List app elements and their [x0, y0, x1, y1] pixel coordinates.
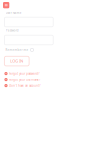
button[interactable]: Remember me — [31, 48, 33, 51]
staticText: Don't have an account? — [9, 84, 40, 87]
staticText: Password — [6, 29, 19, 32]
staticText: User Name — [6, 11, 22, 15]
staticText: Forgot your password? — [9, 72, 39, 75]
button[interactable]: LOG IN — [4, 56, 29, 66]
button[interactable]: Don't have an account? — [4, 83, 54, 89]
button[interactable]: Forgot your password? — [4, 71, 54, 77]
staticText: Remember me — [6, 48, 29, 52]
button[interactable]: Forgot your username? — [4, 77, 54, 83]
staticText: LOG IN — [10, 58, 23, 64]
staticText: Forgot your username? — [9, 78, 40, 81]
